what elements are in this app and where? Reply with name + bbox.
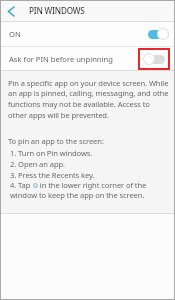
staticText: Ask for PIN before unpinning bbox=[9, 54, 113, 64]
button[interactable] bbox=[0, 1, 22, 21]
button[interactable]: PIN WINDOWS bbox=[0, 0, 175, 21]
button[interactable]: Ask for PIN before unpinning bbox=[0, 47, 175, 70]
staticText: ON bbox=[9, 29, 21, 39]
staticText: window to keep the app on the screen. bbox=[10, 190, 145, 200]
staticText: 1. Turn on Pin windows. 2. Open an app. … bbox=[10, 148, 95, 180]
button[interactable]: ON bbox=[0, 22, 175, 46]
staticText: 4. Tap bbox=[10, 180, 33, 190]
button[interactable] bbox=[143, 53, 165, 65]
staticText: in the lower right corner of the bbox=[38, 180, 147, 190]
staticText: Pin a specific app on your device screen… bbox=[8, 78, 168, 121]
staticText: To pin an app to the screen: bbox=[8, 136, 104, 146]
staticText: PIN WINDOWS bbox=[29, 5, 85, 16]
